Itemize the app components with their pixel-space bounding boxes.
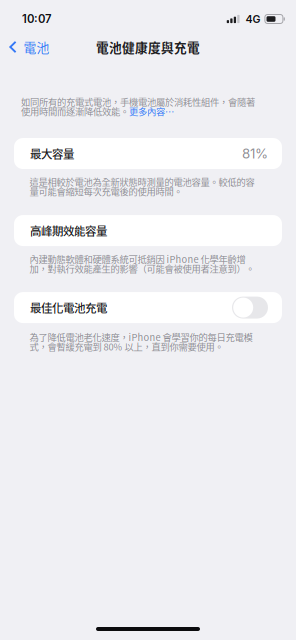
staticText: 高峰期效能容量	[30, 222, 107, 239]
staticText: 81%	[242, 145, 268, 162]
staticText: 如同所有的充電式電池，手機電池屬於消耗性組件，會隨著使用時間而逐漸降低效能。更多…	[21, 95, 255, 118]
staticText: 為了降低電池老化速度，iPhone 會學習你的每日充電模式，會暫緩充電到 80%…	[29, 330, 252, 353]
staticText: 最大容量	[30, 145, 74, 162]
staticText: 10:07	[22, 12, 52, 26]
button[interactable]: 最佳化電池充電	[232, 297, 268, 319]
staticText: 電池	[23, 38, 49, 56]
staticText: 最佳化電池充電	[30, 299, 107, 316]
staticText: 電池健康度與充電	[96, 38, 200, 56]
button[interactable]: 電池	[0, 33, 57, 61]
staticText: 這是相較於電池為全新狀態時測量的電池容量。較低的容量可能會縮短每次充電後的使用時…	[29, 175, 254, 198]
staticText: 4G	[245, 12, 260, 25]
staticText: 內建動態軟體和硬體系統可抵銷因 iPhone 化學年齡增加，對執行效能產生的影響…	[29, 252, 254, 275]
